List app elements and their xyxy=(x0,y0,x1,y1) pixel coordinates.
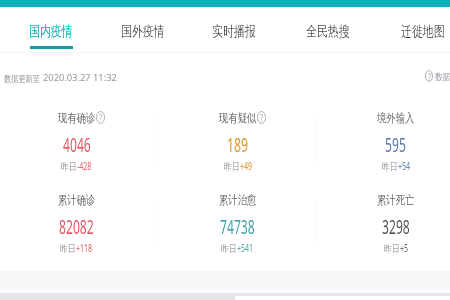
button[interactable]: 数据说明 xyxy=(425,70,450,82)
staticText: ? xyxy=(260,110,263,125)
button[interactable]: 累计确诊 xyxy=(6,192,146,255)
button[interactable]: 累计治愈 xyxy=(167,192,307,255)
staticText: 国内疫情 xyxy=(29,23,73,41)
button[interactable]: 现有确诊 xyxy=(6,110,146,173)
button[interactable]: 境外输入 xyxy=(325,110,450,173)
staticText: 昨日 xyxy=(60,242,76,255)
staticText: 昨日 xyxy=(224,160,240,173)
staticText: 4046 xyxy=(63,132,91,158)
staticText: 国外疫情 xyxy=(121,23,165,41)
staticText: 累计死亡 xyxy=(377,192,414,207)
staticText: +54 xyxy=(398,158,410,173)
staticText: +118 xyxy=(76,240,93,255)
staticText: +541 xyxy=(237,240,254,255)
button[interactable]: 全民热搜 xyxy=(283,10,373,52)
staticText: 实时播报 xyxy=(212,23,256,41)
staticText: 昨日 xyxy=(382,160,398,173)
staticText: 昨日 xyxy=(384,242,400,255)
staticText: 累计治愈 xyxy=(219,192,256,207)
button[interactable]: 迁徙地图 xyxy=(378,10,450,52)
staticText: ? xyxy=(428,69,431,84)
button[interactable]: 国外疫情 xyxy=(98,10,188,52)
staticText: 现有疑似 xyxy=(219,110,256,125)
button[interactable]: 累计死亡 xyxy=(325,192,450,255)
staticText: 迁徙地图 xyxy=(401,23,445,41)
staticText: 595 xyxy=(385,132,406,158)
other: 数据说明 xyxy=(425,70,433,82)
staticText: 2020.03.27 11:32 xyxy=(43,71,117,84)
staticText: 82082 xyxy=(59,214,94,240)
staticText: ? xyxy=(99,110,102,125)
staticText: 昨日 xyxy=(61,160,77,173)
staticText: 数据更新至 xyxy=(4,73,40,84)
button[interactable]: 实时播报 xyxy=(189,10,279,52)
staticText: 累计确诊 xyxy=(58,192,95,207)
staticText: 境外输入 xyxy=(377,110,414,125)
staticText: 现有确诊 xyxy=(58,110,95,125)
staticText: 全民热搜 xyxy=(306,23,350,41)
staticText: 数据说明 xyxy=(435,71,450,82)
button[interactable]: 国内疫情 xyxy=(6,10,96,52)
button[interactable]: 现有疑似 xyxy=(167,110,307,173)
staticText: +49 xyxy=(240,158,252,173)
staticText: 3298 xyxy=(382,214,410,240)
staticText: 昨日 xyxy=(221,242,237,255)
staticText: 74738 xyxy=(220,214,255,240)
staticText: +5 xyxy=(400,240,408,255)
staticText: -428 xyxy=(77,158,92,173)
staticText: 189 xyxy=(227,132,248,158)
